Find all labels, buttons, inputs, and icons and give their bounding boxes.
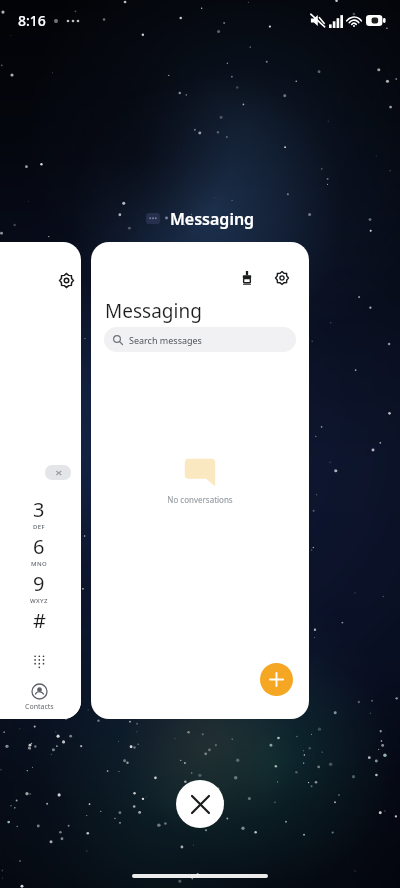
button[interactable]: Search messages (104, 327, 296, 352)
button[interactable]: Clear all (176, 780, 224, 828)
staticText: WXYZ (30, 597, 48, 604)
staticText: MNO (31, 560, 48, 567)
button[interactable]: Delete (45, 465, 71, 480)
button[interactable]: Dialpad (24, 646, 54, 676)
staticText: 8:16 (18, 11, 46, 30)
staticText: 3 (33, 496, 45, 523)
button[interactable]: Settings (52, 266, 80, 294)
button[interactable]: Settings (0, 242, 81, 719)
button[interactable]: 3 (22, 496, 56, 530)
button[interactable]: # (22, 607, 56, 641)
button[interactable]: 6 (22, 533, 56, 567)
staticText: Messaging (105, 298, 202, 324)
staticText: Search messages (129, 334, 202, 346)
button[interactable]: 9 (22, 570, 56, 604)
staticText: No conversations (167, 494, 233, 505)
staticText: 6 (33, 533, 45, 560)
button[interactable]: New conversation (260, 663, 293, 696)
staticText: 9 (33, 570, 45, 597)
staticText: DEF (33, 523, 46, 530)
button[interactable]: Contacts (8, 684, 70, 712)
staticText: Contacts (25, 702, 54, 712)
button[interactable]: Clean up (234, 265, 260, 291)
staticText: Messaging (170, 208, 255, 230)
button[interactable]: Clean up (91, 242, 309, 719)
button[interactable]: Settings (269, 265, 295, 291)
staticText: # (33, 607, 46, 634)
